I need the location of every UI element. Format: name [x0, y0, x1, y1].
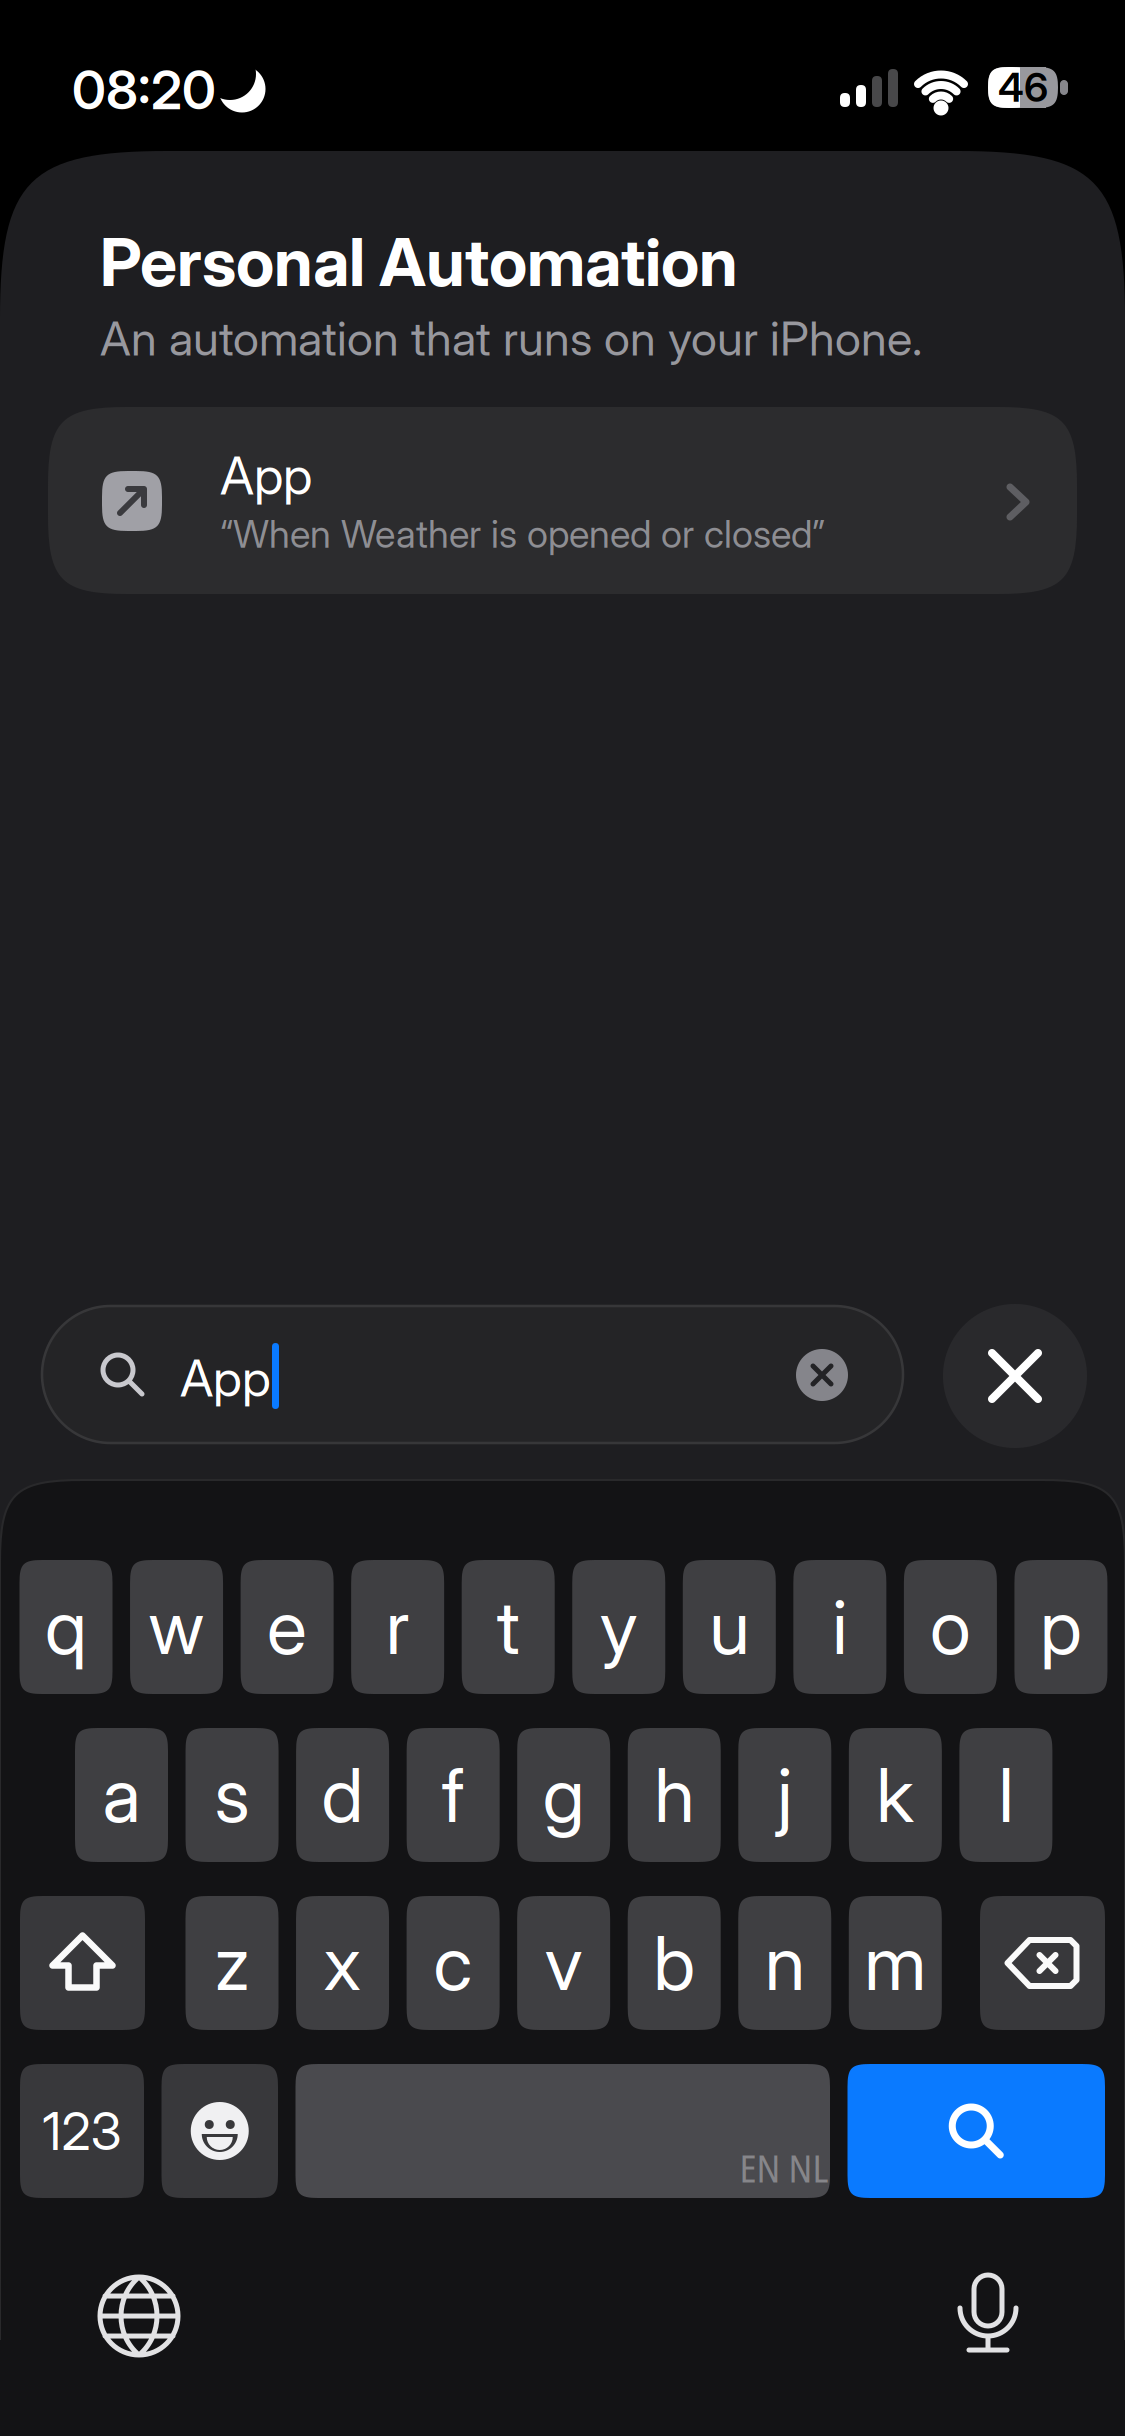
- button[interactable]: Dictate: [955, 2272, 1021, 2354]
- staticText: i: [832, 1582, 847, 1672]
- button[interactable]: u: [683, 1560, 776, 1694]
- staticText: t: [497, 1582, 520, 1672]
- staticText: y: [600, 1582, 638, 1672]
- staticText: a: [102, 1750, 140, 1840]
- button[interactable]: 123: [20, 2064, 144, 2198]
- staticText: s: [215, 1750, 250, 1840]
- staticText: An automation that runs on your iPhone.: [100, 310, 922, 367]
- staticText: x: [324, 1918, 362, 2008]
- staticText: App: [220, 444, 312, 507]
- button[interactable]: v: [517, 1896, 610, 2030]
- staticText: e: [267, 1582, 307, 1672]
- staticText: Personal Automation: [100, 222, 738, 302]
- button[interactable]: Shift: [20, 1896, 145, 2030]
- staticText: “When Weather is opened or closed”: [220, 511, 825, 557]
- button[interactable]: g: [517, 1728, 610, 1862]
- staticText: p: [1040, 1582, 1082, 1672]
- button[interactable]: h: [628, 1728, 721, 1862]
- staticText: k: [876, 1750, 914, 1840]
- button[interactable]: q: [19, 1560, 112, 1694]
- button[interactable]: r: [351, 1560, 444, 1694]
- staticText: d: [322, 1750, 364, 1840]
- staticText: EN NL: [739, 2142, 828, 2194]
- staticText: b: [653, 1918, 695, 2008]
- staticText: n: [765, 1918, 805, 2008]
- button[interactable]: d: [296, 1728, 389, 1862]
- button[interactable]: b: [628, 1896, 721, 2030]
- button[interactable]: Next keyboard: [98, 2275, 180, 2357]
- staticText: g: [543, 1750, 585, 1840]
- staticText: u: [709, 1582, 749, 1672]
- button[interactable]: e: [241, 1560, 334, 1694]
- staticText: v: [545, 1918, 583, 2008]
- staticText: 46: [998, 63, 1048, 111]
- button[interactable]: i: [793, 1560, 886, 1694]
- staticText: f: [442, 1750, 465, 1840]
- staticText: o: [930, 1582, 971, 1672]
- button[interactable]: w: [130, 1560, 223, 1694]
- button[interactable]: Delete: [980, 1896, 1105, 2030]
- button[interactable]: f: [407, 1728, 500, 1862]
- staticText: w: [149, 1582, 205, 1672]
- button[interactable]: y: [572, 1560, 665, 1694]
- button[interactable]: s: [186, 1728, 279, 1862]
- button[interactable]: p: [1014, 1560, 1107, 1694]
- staticText: q: [45, 1582, 87, 1672]
- staticText: r: [386, 1582, 410, 1672]
- button[interactable]: m: [849, 1896, 942, 2030]
- button[interactable]: Search: [847, 2064, 1105, 2198]
- button[interactable]: Close: [943, 1304, 1087, 1448]
- staticText: App: [180, 1347, 271, 1409]
- staticText: z: [214, 1918, 249, 2008]
- button[interactable]: c: [407, 1896, 500, 2030]
- button[interactable]: x: [296, 1896, 389, 2030]
- staticText: l: [998, 1750, 1013, 1840]
- button[interactable]: Clear text: [796, 1349, 848, 1401]
- button[interactable]: t: [462, 1560, 555, 1694]
- staticText: h: [654, 1750, 694, 1840]
- button[interactable]: n: [738, 1896, 831, 2030]
- button[interactable]: j: [738, 1728, 831, 1862]
- button[interactable]: App: [48, 407, 1077, 594]
- button[interactable]: Space: [295, 2064, 830, 2198]
- staticText: c: [434, 1918, 473, 2008]
- staticText: 08:20: [72, 58, 216, 122]
- staticText: 123: [42, 2099, 121, 2162]
- button[interactable]: l: [959, 1728, 1052, 1862]
- staticText: m: [864, 1918, 926, 2008]
- button[interactable]: k: [849, 1728, 942, 1862]
- staticText: j: [777, 1750, 792, 1840]
- button[interactable]: z: [185, 1896, 278, 2030]
- button[interactable]: a: [75, 1728, 168, 1862]
- button[interactable]: Emoji: [161, 2064, 278, 2198]
- button[interactable]: o: [904, 1560, 997, 1694]
